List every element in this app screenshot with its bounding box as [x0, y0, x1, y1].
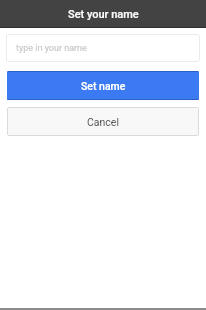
staticText: Set name: [81, 80, 126, 92]
staticText: type in your name: [16, 43, 87, 54]
staticText: Cancel: [87, 116, 119, 128]
button[interactable]: Set name: [7, 71, 199, 100]
button[interactable]: Cancel: [7, 107, 199, 136]
button[interactable]: type in your name: [6, 34, 200, 62]
staticText: Set your name: [68, 8, 139, 21]
